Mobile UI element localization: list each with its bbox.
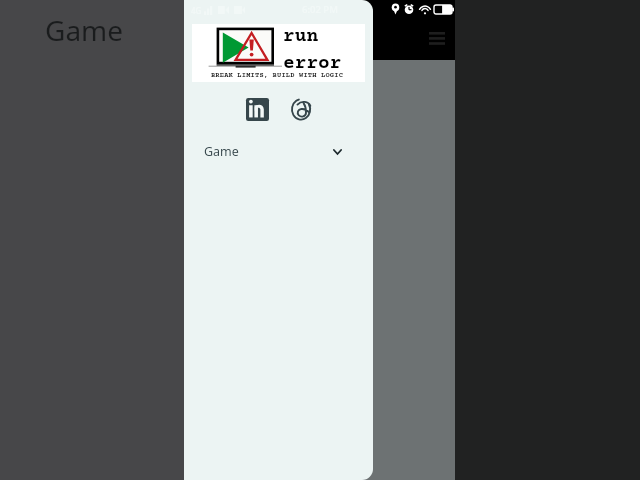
button[interactable]: Threads [290, 98, 313, 121]
button[interactable]: Menu [429, 32, 445, 45]
staticText: error [283, 53, 342, 75]
button[interactable]: Game [184, 138, 373, 165]
staticText: run [283, 26, 319, 48]
staticText: Game [204, 143, 239, 160]
staticText: Game [45, 11, 124, 49]
button[interactable]: LinkedIn [246, 98, 269, 121]
staticText: BREAK LIMITS, BUILD WITH LOGIC [207, 71, 347, 79]
